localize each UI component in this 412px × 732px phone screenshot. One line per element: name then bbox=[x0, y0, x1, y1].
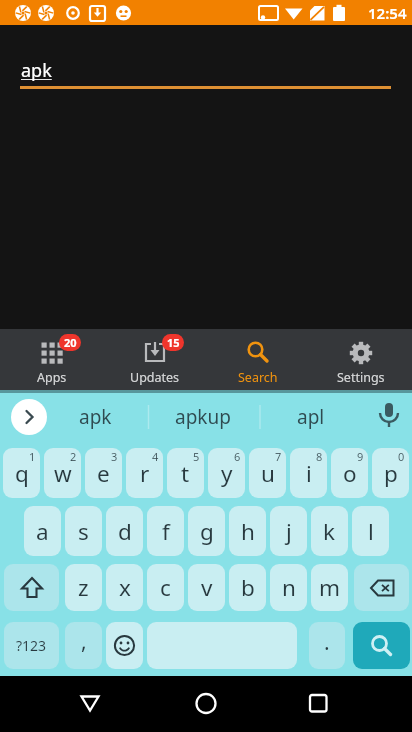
button[interactable] bbox=[275, 676, 412, 732]
button[interactable]: w bbox=[44, 448, 81, 498]
button[interactable]: Settings bbox=[309, 329, 412, 390]
button[interactable]: h bbox=[229, 506, 266, 556]
button[interactable] bbox=[4, 564, 59, 611]
button[interactable] bbox=[354, 564, 409, 611]
staticText: t bbox=[181, 458, 190, 489]
button[interactable]: g bbox=[188, 506, 225, 556]
staticText: h bbox=[241, 516, 255, 547]
staticText: a bbox=[36, 516, 49, 547]
staticText: o bbox=[343, 458, 357, 489]
staticText: 4 bbox=[152, 449, 159, 464]
button[interactable]: x bbox=[106, 564, 143, 611]
staticText: e bbox=[97, 458, 110, 489]
button[interactable] bbox=[106, 622, 143, 669]
staticText: 1 bbox=[29, 449, 36, 464]
staticText: b bbox=[241, 572, 255, 603]
staticText: 12:54 bbox=[368, 3, 407, 23]
button[interactable]: d bbox=[106, 506, 143, 556]
staticText: p bbox=[384, 458, 398, 489]
staticText: 3 bbox=[111, 449, 118, 464]
staticText: c bbox=[160, 572, 171, 603]
staticText: 20 bbox=[64, 335, 77, 350]
button[interactable]: . bbox=[309, 622, 345, 669]
staticText: Settings bbox=[337, 369, 385, 386]
button[interactable]: o bbox=[331, 448, 368, 498]
button[interactable]: l bbox=[352, 506, 389, 556]
button[interactable]: b bbox=[229, 564, 266, 611]
staticText: d bbox=[118, 516, 132, 547]
staticText: m bbox=[319, 572, 341, 603]
staticText: Updates bbox=[130, 369, 180, 386]
staticText: 15 bbox=[167, 335, 180, 350]
button[interactable]: u bbox=[249, 448, 286, 498]
button[interactable] bbox=[0, 676, 138, 732]
staticText: apk bbox=[79, 404, 112, 430]
staticText: 8 bbox=[316, 449, 323, 464]
staticText: u bbox=[261, 458, 275, 489]
staticText: i bbox=[306, 458, 312, 489]
button[interactable]: j bbox=[270, 506, 307, 556]
staticText: k bbox=[323, 516, 336, 547]
button[interactable]: e bbox=[85, 448, 122, 498]
button[interactable]: k bbox=[311, 506, 348, 556]
button[interactable]: apk bbox=[0, 25, 412, 329]
staticText: v bbox=[201, 572, 213, 603]
staticText: 7 bbox=[275, 449, 282, 464]
button[interactable]: , bbox=[65, 622, 102, 669]
button[interactable]: c bbox=[147, 564, 184, 611]
button[interactable]: apl bbox=[273, 396, 349, 438]
staticText: g bbox=[200, 516, 214, 547]
staticText: l bbox=[368, 516, 374, 547]
staticText: f bbox=[162, 516, 170, 547]
button[interactable] bbox=[375, 401, 403, 429]
staticText: . bbox=[324, 628, 330, 657]
button[interactable]: s bbox=[65, 506, 102, 556]
staticText: 5 bbox=[193, 449, 200, 464]
button[interactable]: q bbox=[3, 448, 40, 498]
staticText: Search bbox=[238, 369, 278, 386]
button[interactable]: a bbox=[24, 506, 61, 556]
button[interactable]: f bbox=[147, 506, 184, 556]
staticText: q bbox=[15, 458, 29, 489]
staticText: 2 bbox=[70, 449, 77, 464]
button[interactable]: apk bbox=[57, 396, 133, 438]
button[interactable]: 20 bbox=[0, 329, 103, 390]
staticText: s bbox=[78, 516, 89, 547]
button[interactable]: p bbox=[372, 448, 409, 498]
button[interactable]: z bbox=[65, 564, 102, 611]
staticText: r bbox=[140, 458, 150, 489]
staticText: ?123 bbox=[16, 636, 47, 655]
button[interactable] bbox=[138, 676, 275, 732]
staticText: 6 bbox=[234, 449, 241, 464]
button[interactable]: Search bbox=[206, 329, 309, 390]
staticText: z bbox=[78, 572, 89, 603]
button[interactable]: apkup bbox=[155, 396, 251, 438]
staticText: n bbox=[282, 572, 296, 603]
button[interactable]: v bbox=[188, 564, 225, 611]
button[interactable]: m bbox=[311, 564, 348, 611]
button[interactable]: n bbox=[270, 564, 307, 611]
staticText: y bbox=[221, 458, 233, 489]
staticText: w bbox=[54, 458, 72, 489]
staticText: Apps bbox=[37, 369, 67, 386]
button[interactable] bbox=[147, 622, 297, 669]
staticText: j bbox=[286, 516, 292, 547]
button[interactable] bbox=[353, 622, 410, 669]
staticText: apkup bbox=[175, 404, 231, 430]
button[interactable]: ?123 bbox=[4, 622, 59, 669]
button[interactable]: y bbox=[208, 448, 245, 498]
staticText: 0 bbox=[398, 449, 405, 464]
staticText: apk bbox=[21, 58, 52, 83]
staticText: x bbox=[119, 572, 131, 603]
staticText: apl bbox=[297, 404, 325, 430]
staticText: 9 bbox=[357, 449, 364, 464]
button[interactable]: t bbox=[167, 448, 204, 498]
button[interactable]: r bbox=[126, 448, 163, 498]
button[interactable] bbox=[11, 399, 47, 435]
button[interactable]: i bbox=[290, 448, 327, 498]
button[interactable]: 15 bbox=[103, 329, 206, 390]
staticText: , bbox=[81, 627, 87, 656]
